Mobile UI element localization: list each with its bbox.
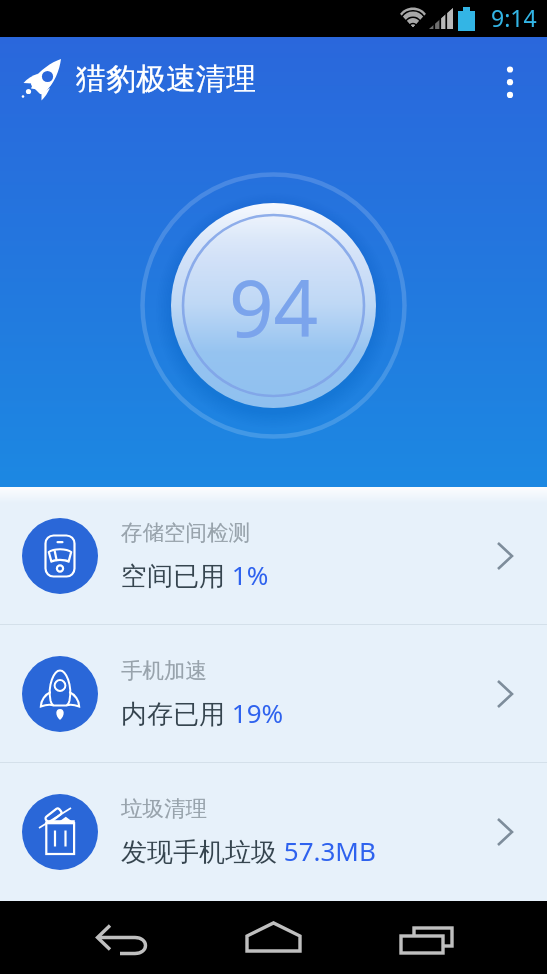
button[interactable]: 存储空间检测 — [0, 487, 547, 624]
button[interactable]: Back — [60, 901, 185, 974]
staticText: 猎豹极速清理 — [76, 60, 256, 98]
staticText: 垃圾清理 — [121, 795, 207, 822]
button[interactable]: More options — [482, 51, 538, 107]
staticText: 内存已用 19% — [121, 695, 284, 731]
button[interactable]: 手机加速 — [0, 625, 547, 762]
staticText: 存储空间检测 — [121, 519, 250, 546]
button[interactable]: Recent apps — [362, 901, 487, 974]
button[interactable]: Home — [212, 901, 335, 974]
button[interactable]: 垃圾清理 — [0, 763, 547, 900]
staticText: 9:14 — [491, 2, 537, 33]
staticText: 94 — [229, 254, 319, 360]
staticText: 发现手机垃圾 57.3MB — [121, 833, 376, 869]
staticText: 空间已用 1% — [121, 557, 269, 593]
staticText: 手机加速 — [121, 657, 207, 684]
